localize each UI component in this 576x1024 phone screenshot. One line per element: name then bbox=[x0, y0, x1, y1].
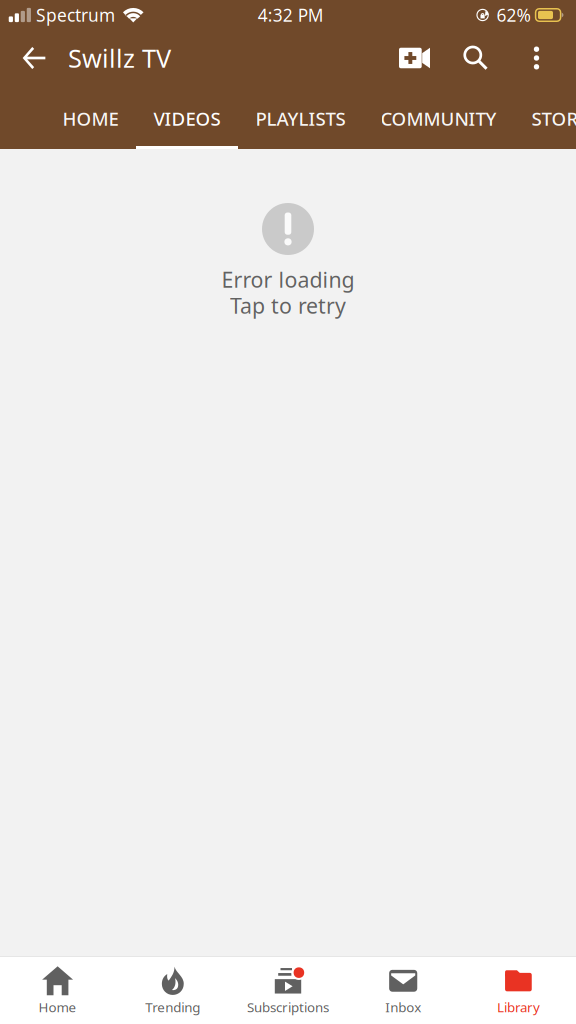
button[interactable]: Error loading bbox=[221, 203, 354, 318]
staticText: Swillz TV bbox=[68, 41, 171, 75]
staticText: PLAYLISTS bbox=[255, 106, 345, 131]
button[interactable]: Subscriptions bbox=[230, 957, 346, 1024]
staticText: VIDEOS bbox=[153, 106, 220, 131]
staticText: Trending bbox=[145, 998, 200, 1016]
staticText: Tap to retry bbox=[230, 291, 346, 320]
button[interactable]: Library bbox=[461, 957, 576, 1024]
button[interactable]: PLAYLISTS bbox=[238, 86, 363, 149]
button[interactable]: HOME bbox=[45, 86, 136, 149]
staticText: Subscriptions bbox=[247, 998, 329, 1016]
staticText: 62% bbox=[497, 3, 531, 26]
staticText: Inbox bbox=[385, 998, 421, 1016]
button[interactable]: Create video bbox=[384, 30, 445, 86]
button[interactable]: More options bbox=[506, 30, 567, 86]
button[interactable]: STORE bbox=[514, 86, 576, 149]
staticText: STORE bbox=[531, 106, 576, 131]
staticText: 4:32 PM bbox=[258, 3, 324, 26]
button[interactable]: Trending bbox=[115, 957, 230, 1024]
staticText: COMMUNITY bbox=[380, 106, 496, 131]
button[interactable]: Back bbox=[6, 30, 62, 86]
button[interactable]: Search bbox=[445, 30, 506, 86]
staticText: Library bbox=[497, 998, 540, 1016]
button[interactable]: Home bbox=[0, 957, 115, 1024]
button[interactable]: VIDEOS bbox=[136, 86, 238, 149]
staticText: Spectrum bbox=[36, 3, 115, 26]
staticText: Home bbox=[39, 998, 77, 1016]
staticText: Error loading bbox=[221, 265, 354, 294]
button[interactable]: Inbox bbox=[346, 957, 461, 1024]
staticText: HOME bbox=[62, 106, 118, 131]
button[interactable]: COMMUNITY bbox=[363, 86, 514, 149]
